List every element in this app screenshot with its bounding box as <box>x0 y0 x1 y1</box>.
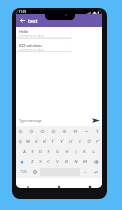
button[interactable]: G <box>53 147 62 157</box>
button[interactable]: Type message <box>16 114 89 126</box>
staticText: 0 <box>99 138 101 141</box>
staticText: L <box>92 149 95 155</box>
staticText: E <box>35 139 38 145</box>
staticText: S <box>31 149 34 155</box>
button[interactable]: F <box>44 147 53 157</box>
staticText: U <box>69 139 72 145</box>
button[interactable]: A <box>20 147 28 157</box>
button[interactable]: Back <box>16 14 28 27</box>
staticText: 1 <box>21 138 23 141</box>
staticText: test <box>28 17 38 24</box>
staticText: 5/6/2022 @ 11:18:44 <box>19 49 44 51</box>
button[interactable]: Send <box>89 114 102 126</box>
staticText: O <box>87 139 91 145</box>
button[interactable]: Keyboard option 6 <box>73 129 78 134</box>
button[interactable]: ?123 <box>16 167 30 177</box>
button[interactable]: T <box>48 137 57 147</box>
staticText: 9 <box>90 138 92 141</box>
staticText: P <box>96 139 99 145</box>
button[interactable]: Back <box>25 185 31 188</box>
staticText: 6 <box>63 138 65 141</box>
button[interactable]: I <box>75 137 84 147</box>
button[interactable]: Q <box>16 137 24 147</box>
button[interactable]: P <box>93 137 102 147</box>
staticText: 7 <box>72 138 74 141</box>
button[interactable]: Emoji <box>30 167 39 177</box>
staticText: K <box>83 149 86 155</box>
staticText: C <box>47 159 50 165</box>
button[interactable]: O <box>84 137 93 147</box>
staticText: J <box>75 149 77 155</box>
staticText: G <box>56 149 59 155</box>
button[interactable]: Hello <box>16 27 71 37</box>
button[interactable]: U <box>66 137 75 147</box>
button[interactable]: C <box>44 157 53 167</box>
button[interactable]: R <box>40 137 48 147</box>
button[interactable]: K <box>80 147 89 157</box>
staticText: F <box>47 149 50 155</box>
staticText: V <box>56 159 59 165</box>
button[interactable]: M <box>80 157 89 167</box>
button[interactable]: Recents <box>87 185 93 188</box>
staticText: X <box>39 159 42 165</box>
staticText: T <box>51 139 54 145</box>
staticText: B <box>65 159 68 165</box>
button[interactable]: Keyboard option 2 <box>29 129 34 134</box>
button[interactable]: Keyboard option 4 <box>51 129 56 134</box>
staticText: M <box>83 159 87 165</box>
staticText: Q <box>18 139 22 145</box>
button[interactable]: K29 solutions <box>16 41 71 51</box>
button[interactable]: Home <box>56 185 62 188</box>
button[interactable]: Y <box>57 137 66 147</box>
button[interactable]: N <box>71 157 80 167</box>
button[interactable]: Z <box>28 157 36 167</box>
staticText: ?123 <box>20 170 27 174</box>
staticText: 5/6/2022 @ 11:18:19 <box>19 35 44 37</box>
staticText: 5 <box>54 138 56 141</box>
staticText: A <box>23 149 26 155</box>
staticText: Hello <box>19 29 28 34</box>
staticText: W <box>26 139 30 145</box>
staticText: Z <box>31 159 34 165</box>
button[interactable]: J <box>71 147 80 157</box>
button[interactable]: S <box>28 147 36 157</box>
button[interactable]: E <box>32 137 40 147</box>
button[interactable]: D <box>36 147 44 157</box>
staticText: N <box>74 159 78 165</box>
staticText: K29 solutions <box>19 43 43 48</box>
button[interactable]: Keyboard option 8 <box>95 129 100 134</box>
button[interactable]: B <box>62 157 71 167</box>
button[interactable]: Keyboard option 5 <box>62 129 67 134</box>
staticText: Type message <box>19 118 42 123</box>
button[interactable]: Keyboard option 3 <box>40 129 45 134</box>
staticText: Y <box>60 139 63 145</box>
button[interactable]: Shift <box>16 157 28 167</box>
button[interactable]: Enter <box>89 167 102 177</box>
staticText: 2 <box>29 138 31 141</box>
button[interactable]: Keyboard option 7 <box>84 129 89 134</box>
staticText: 11:19 <box>19 10 27 14</box>
button[interactable]: H <box>62 147 71 157</box>
staticText: 3 <box>37 138 39 141</box>
button[interactable]: W <box>24 137 32 147</box>
staticText: D <box>39 149 42 155</box>
staticText: H <box>65 149 69 155</box>
button[interactable]: L <box>89 147 98 157</box>
button[interactable]: Period <box>81 167 89 177</box>
button[interactable]: Backspace <box>89 157 102 167</box>
button[interactable]: V <box>53 157 62 167</box>
button[interactable]: Keyboard option 1 <box>18 129 23 134</box>
button[interactable]: X <box>36 157 44 167</box>
staticText: 4 <box>45 138 47 141</box>
staticText: R <box>43 139 46 145</box>
staticText: I <box>79 139 81 145</box>
staticText: 8 <box>81 138 83 141</box>
